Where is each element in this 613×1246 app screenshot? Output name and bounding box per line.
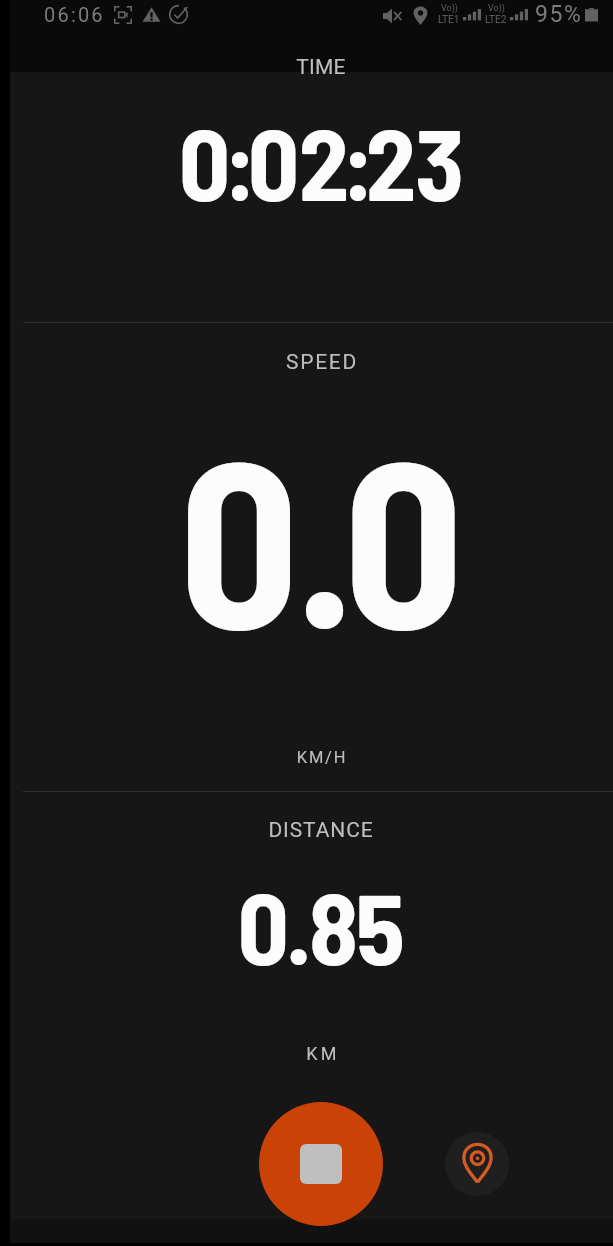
staticText: Vo)) xyxy=(488,3,505,14)
button[interactable]: Stop tracking xyxy=(259,1102,383,1226)
staticText: : xyxy=(342,101,374,221)
staticText: 02 xyxy=(248,101,349,221)
staticText: LTE1 xyxy=(438,14,460,26)
staticText: LTE2 xyxy=(485,14,507,26)
staticText: SPEED xyxy=(30,350,613,375)
staticText: Vo)) xyxy=(441,3,458,14)
staticText: 95% xyxy=(535,1,583,28)
staticText: DISTANCE xyxy=(29,818,613,843)
staticText: TIME xyxy=(29,55,613,80)
staticText: 0.0 xyxy=(28,394,612,675)
staticText: : xyxy=(224,101,256,221)
staticText: KM/H xyxy=(30,748,613,767)
staticText: 0.85 xyxy=(28,865,612,985)
button[interactable]: My location xyxy=(445,1132,509,1196)
staticText: 23 xyxy=(366,101,464,221)
staticText: 06:06 xyxy=(44,3,105,26)
staticText: KM xyxy=(31,1043,613,1064)
staticText: 0 xyxy=(179,101,231,221)
